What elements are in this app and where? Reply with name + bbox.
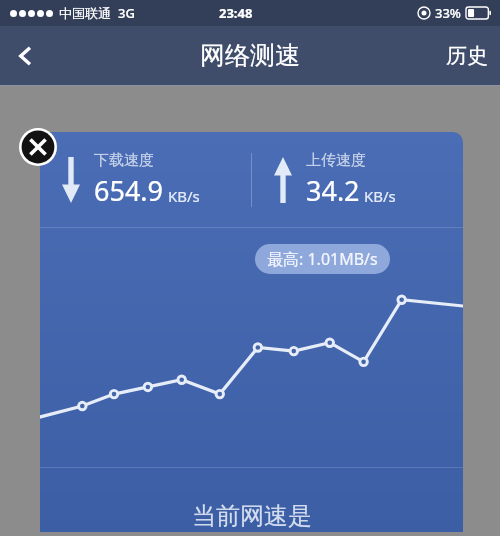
staticText: KB/s: [364, 186, 396, 206]
staticText: 最高: 1.01MB/s: [267, 248, 378, 270]
staticText: 34.2: [306, 172, 360, 209]
staticText: 33%: [435, 4, 461, 22]
staticText: 654.9: [94, 172, 164, 209]
staticText: 当前网速是: [192, 501, 312, 531]
staticText: 中国联通: [59, 5, 111, 21]
staticText: 上传速度: [306, 151, 366, 170]
staticText: KB/s: [168, 186, 200, 206]
staticText: 下载速度: [94, 151, 154, 170]
staticText: 历史: [446, 43, 488, 69]
staticText: 23:48: [219, 4, 253, 22]
button[interactable]: Close: [19, 128, 57, 166]
staticText: 3G: [118, 4, 135, 22]
button[interactable]: Back: [0, 30, 52, 82]
button[interactable]: 历史: [446, 43, 488, 69]
staticText: 网络测速: [200, 40, 300, 71]
